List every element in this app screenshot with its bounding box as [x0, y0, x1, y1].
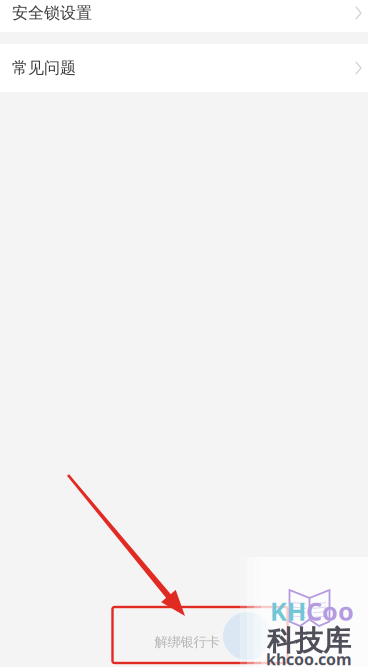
staticText: Coo — [306, 594, 354, 628]
button[interactable]: 解绑银行卡 — [112, 619, 262, 665]
staticText: khcoo.com — [266, 648, 352, 667]
staticText: KH — [270, 594, 306, 628]
staticText: 安全锁设置 — [12, 3, 92, 23]
staticText: 科技库 — [267, 624, 351, 658]
staticText: 解绑银行卡 — [154, 634, 219, 650]
button[interactable]: 常见问题 — [0, 44, 368, 92]
button[interactable]: 安全锁设置 — [0, 0, 368, 32]
staticText: 常见问题 — [12, 58, 76, 78]
